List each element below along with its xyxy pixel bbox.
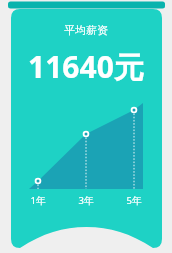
button[interactable]: Average salary banner chart: [0, 0, 172, 253]
